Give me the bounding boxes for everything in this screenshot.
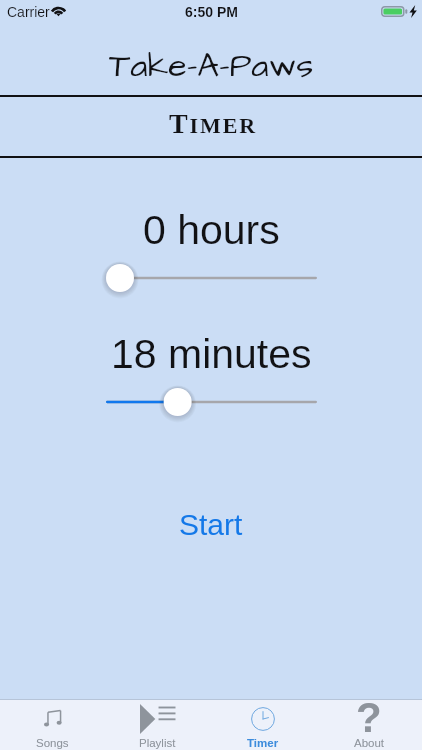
button[interactable]: Playlist [105,700,210,750]
staticText: TIMER [169,108,258,139]
button[interactable]: 18 minutes [106,384,317,420]
staticText: Carrier [7,4,50,20]
staticText: 18 minutes [111,331,312,377]
button[interactable]: Songs [0,700,105,750]
staticText: ? [356,694,382,741]
button[interactable]: Start [153,500,269,550]
staticText: Timer [247,737,279,750]
staticText: 6:50 PM [185,4,238,20]
staticText: Playlist [139,737,176,750]
staticText: Start [179,508,243,542]
staticText: About [354,737,385,750]
staticText: 0 hours [143,207,280,253]
button[interactable]: ? [316,700,422,750]
button[interactable]: 0 hours [106,260,317,296]
button[interactable]: Timer [210,700,316,750]
staticText: Take-A-Paws [109,42,314,89]
staticText: Songs [36,737,69,750]
